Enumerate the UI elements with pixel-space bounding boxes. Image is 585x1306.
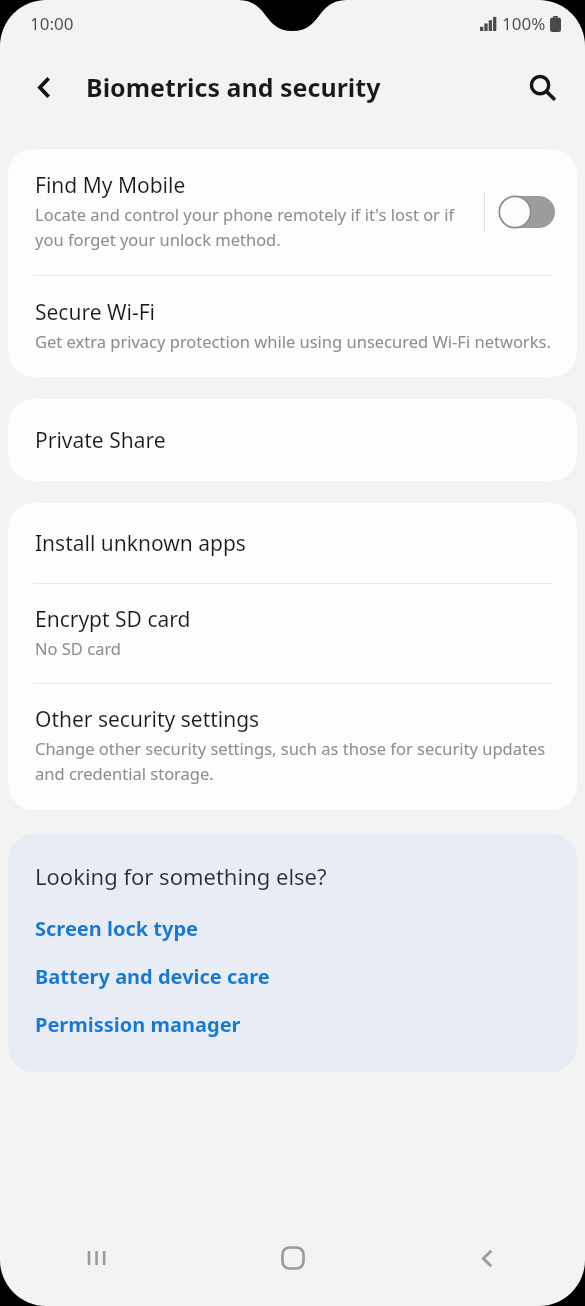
button[interactable]: Home xyxy=(195,1210,390,1306)
staticText: Biometrics and security xyxy=(86,70,381,104)
button[interactable]: Recent apps xyxy=(0,1210,195,1306)
staticText: Private Share xyxy=(35,426,166,455)
button[interactable]: Secure Wi-Fi xyxy=(8,276,577,377)
button[interactable]: Permission manager xyxy=(8,1009,577,1040)
staticText: 10:00 xyxy=(30,12,74,35)
button[interactable]: Private Share xyxy=(8,399,577,481)
staticText: Get extra privacy protection while using… xyxy=(35,330,551,352)
button[interactable]: Find My Mobile toggle xyxy=(497,189,557,235)
button[interactable]: Other security settings xyxy=(8,684,577,810)
staticText: Battery and device care xyxy=(35,963,270,990)
staticText: Looking for something else? xyxy=(35,861,327,891)
staticText: Install unknown apps xyxy=(35,529,246,558)
button[interactable]: Battery and device care xyxy=(8,961,577,992)
staticText: Change other security settings, such as … xyxy=(35,737,559,784)
button[interactable]: Find My Mobile xyxy=(8,149,577,275)
button[interactable]: Install unknown apps xyxy=(8,503,577,583)
staticText: Screen lock type xyxy=(35,915,199,942)
staticText: Find My Mobile xyxy=(35,171,186,200)
button[interactable]: Screen lock type xyxy=(8,913,577,944)
button[interactable]: Encrypt SD card xyxy=(8,584,577,683)
button[interactable]: Back xyxy=(20,63,68,111)
button[interactable]: Search xyxy=(518,63,566,111)
staticText: Other security settings xyxy=(35,705,260,734)
staticText: Encrypt SD card xyxy=(35,605,191,634)
staticText: Locate and control your phone remotely i… xyxy=(35,203,478,250)
staticText: Secure Wi-Fi xyxy=(35,298,156,327)
staticText: 100% xyxy=(502,12,546,35)
staticText: Permission manager xyxy=(35,1011,241,1038)
staticText: No SD card xyxy=(35,637,122,659)
button[interactable]: Back xyxy=(390,1210,585,1306)
